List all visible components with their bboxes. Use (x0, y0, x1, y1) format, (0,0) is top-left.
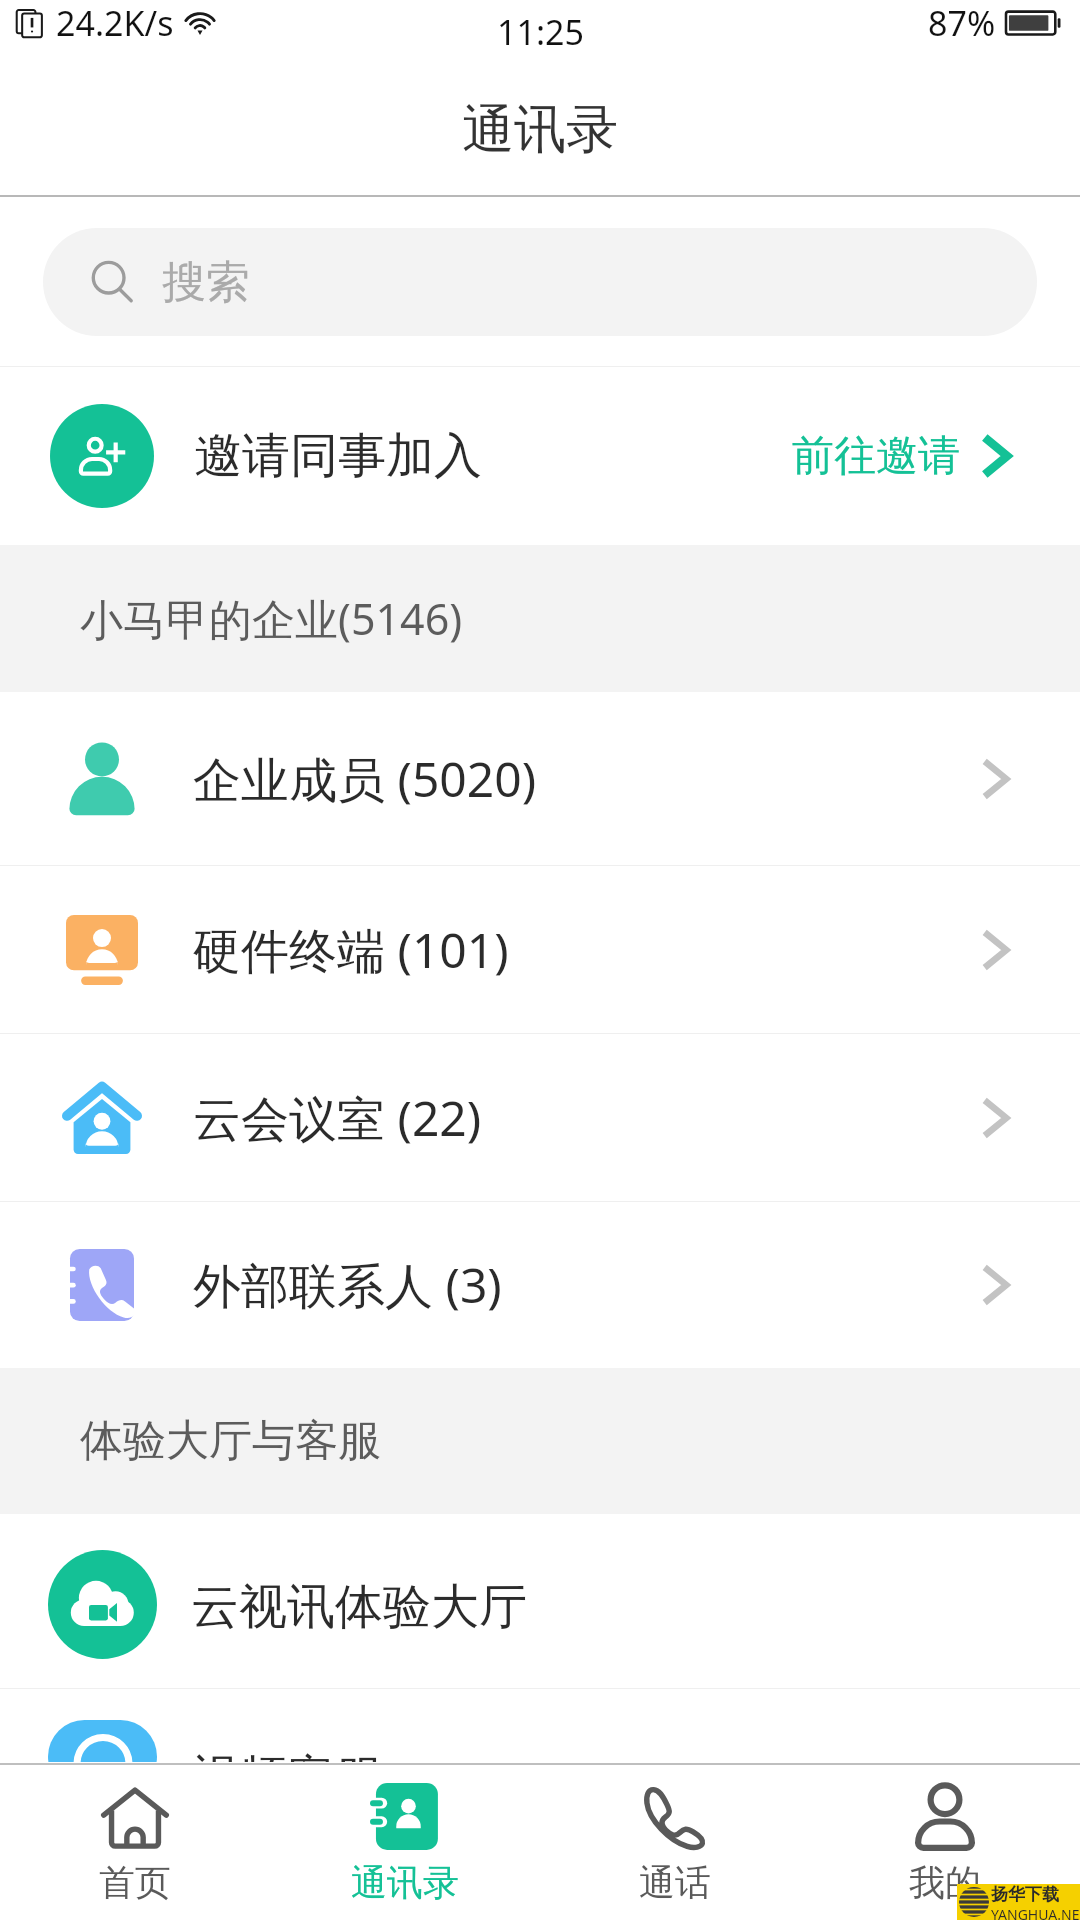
staticText: 视频客服 (191, 1748, 383, 1762)
button[interactable]: 我的 (810, 1765, 1080, 1905)
staticText: 通讯录 (351, 1860, 459, 1905)
button[interactable]: 通话 (540, 1765, 810, 1905)
staticText: 前往邀请 (792, 430, 960, 483)
staticText: 小马甲的企业(5146) (80, 589, 463, 648)
staticText: 硬件终端 (101) (193, 917, 509, 983)
button[interactable]: 企业成员 (5020) (0, 692, 1080, 865)
staticText: 云视讯体验大厅 (191, 1577, 527, 1637)
staticText: 首页 (99, 1860, 171, 1905)
button[interactable]: 外部联系人 (3) (0, 1202, 1080, 1368)
button[interactable]: 首页 (0, 1765, 270, 1905)
staticText: 通话 (639, 1860, 711, 1905)
staticText: 通讯录 (462, 97, 618, 163)
staticText: 企业成员 (5020) (193, 746, 537, 812)
button[interactable]: 邀请同事加入 (0, 367, 1080, 545)
button[interactable]: 云视讯体验大厅 (0, 1514, 1080, 1688)
button[interactable]: 云会议室 (22) (0, 1034, 1080, 1201)
staticText: 搜索 (162, 255, 250, 310)
staticText: 体验大厅与客服 (80, 1414, 381, 1468)
staticText: 外部联系人 (3) (193, 1252, 502, 1318)
button[interactable]: 搜索 (43, 228, 1037, 336)
staticText: 87% (928, 0, 996, 46)
button[interactable]: 硬件终端 (101) (0, 866, 1080, 1033)
staticText: 云会议室 (22) (193, 1085, 482, 1151)
staticText: 扬华下载 (991, 1884, 1059, 1905)
button[interactable]: 通讯录 (270, 1765, 540, 1905)
staticText: YANGHUA.NET (991, 1905, 1080, 1920)
staticText: 邀请同事加入 (194, 426, 482, 486)
button[interactable]: 视频客服 (0, 1720, 1080, 1762)
staticText: 我的 (909, 1860, 981, 1905)
staticText: 11:25 (497, 9, 584, 55)
staticText: 24.2K/s (56, 0, 174, 46)
